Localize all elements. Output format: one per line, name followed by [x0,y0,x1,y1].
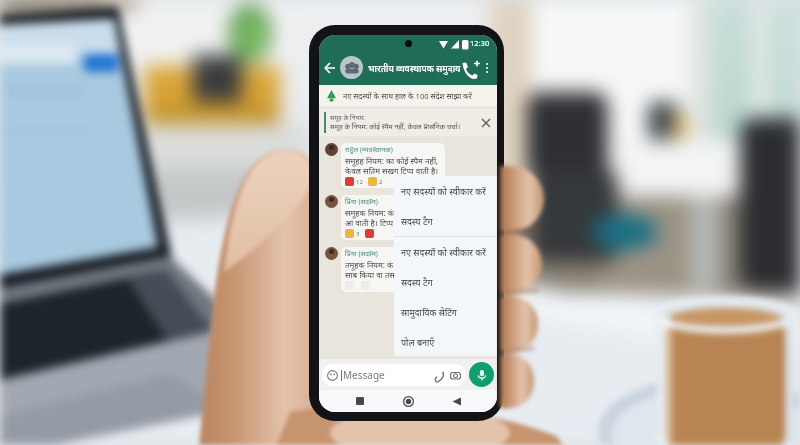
staticText: राहुल (व्यवस्थापक) [345,145,393,155]
staticText: सदस्य टैग [401,215,433,227]
button[interactable]: Back [323,61,337,75]
button[interactable]: नए सदस्यों को स्वीकार करें [394,176,497,206]
button[interactable]: Record voice message [469,362,494,387]
button[interactable]: सामुदायिक सेटिंग [394,297,497,327]
staticText: नए सदस्यों को स्वीकार करें [401,185,486,197]
staticText: पोल बनाएँ [401,336,435,348]
button[interactable]: Camera [450,370,461,381]
staticText: समूह के नियम: कोई स्पैम नहीं, केवल प्रास… [330,122,461,132]
button[interactable]: सदस्य टैग [394,206,497,236]
staticText: प्रिया (सदस्य) [345,249,378,259]
staticText: सामुदायिक सेटिंग [401,306,457,318]
button[interactable]: Home [401,394,415,408]
button[interactable]: Recent apps [353,394,367,408]
button[interactable]: More options [482,60,492,76]
staticText: समूहक नियम: कं अगको अदान आ वाती है। टिप्… [345,207,441,228]
button[interactable]: Close [480,117,492,129]
staticText: 12 [356,178,363,186]
staticText: 12:30 [470,38,490,48]
button[interactable]: पोल बनाएँ [394,327,497,356]
staticText: सदस्य टैग [401,276,433,288]
staticText: Message [343,368,385,382]
staticText: नए सदस्यों को स्वीकार करें [401,246,486,258]
staticText: 2 [379,178,383,186]
button[interactable]: सदस्य टैग [394,267,497,297]
staticText: 3 [356,230,360,238]
staticText: प्रिया (सदस्य) [345,197,378,207]
button[interactable]: नए सदस्यों को स्वीकार करें [394,237,497,267]
staticText: तमूहक नियम: कं बडात lxxn, साब किया वा तस… [345,259,441,280]
staticText: भारतीय व्यवस्थापक समुदाय [368,62,461,74]
staticText: नए सदस्यों के साथ हाल के 100 संदेश साझा … [343,91,472,101]
staticText: समूहह नियम: का कोई स्पैम नहीं, केवल सतिम… [345,155,441,176]
button[interactable]: Back [449,394,463,408]
button[interactable]: Attach [434,370,445,381]
button[interactable]: Add participant call [461,60,476,75]
staticText: समूह के नियम: [330,113,365,122]
